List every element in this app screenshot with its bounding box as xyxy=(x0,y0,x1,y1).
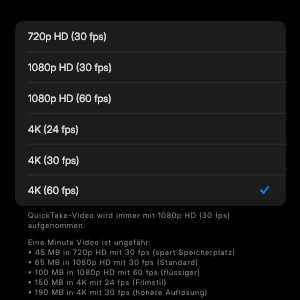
button[interactable]: 1080p HD (30 fps) xyxy=(15,52,286,83)
staticText: 4K (60 fps) xyxy=(28,184,79,196)
staticText: 4K (24 fps) xyxy=(28,123,79,135)
staticText: 720p HD (30 fps) xyxy=(28,30,107,42)
other: Selected xyxy=(260,186,269,194)
staticText: 1080p HD (30 fps) xyxy=(28,61,112,73)
staticText: QuickTake-Video wird immer mit 1080p HD … xyxy=(28,211,231,230)
button[interactable]: 4K (30 fps) xyxy=(15,145,286,176)
button[interactable]: 720p HD (30 fps) xyxy=(15,21,286,52)
staticText: 1080p HD (60 fps) xyxy=(28,92,112,104)
button[interactable]: 4K (60 fps) xyxy=(15,176,286,206)
staticText: 4K (30 fps) xyxy=(28,154,80,166)
button[interactable]: 1080p HD (60 fps) xyxy=(15,83,286,114)
button[interactable]: 4K (24 fps) xyxy=(15,114,286,145)
staticText: Eine Minute Video ist ungefähr: • 45 MB … xyxy=(28,238,236,297)
